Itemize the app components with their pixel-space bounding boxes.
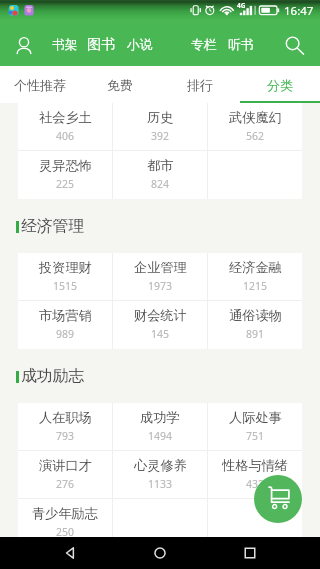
- button[interactable]: 人在职场: [18, 403, 112, 451]
- button[interactable]: Shopping cart: [254, 475, 302, 523]
- staticText: 心灵修养: [134, 457, 187, 474]
- staticText: 562: [246, 129, 265, 143]
- button[interactable]: 企业管理: [113, 253, 207, 301]
- staticText: 成功励志: [21, 366, 85, 386]
- staticText: 4G: [237, 1, 246, 10]
- button[interactable]: 武侠魔幻: [208, 103, 302, 151]
- staticText: 小说: [127, 37, 153, 53]
- staticText: 演讲口才: [39, 457, 92, 474]
- staticText: 历史: [147, 109, 174, 126]
- staticText: 276: [56, 477, 75, 491]
- button[interactable]: 免费: [80, 66, 160, 103]
- staticText: 1133: [148, 477, 173, 491]
- button[interactable]: Profile: [10, 31, 38, 59]
- button[interactable]: 听书: [227, 22, 255, 66]
- staticText: 751: [246, 429, 265, 443]
- staticText: 专栏: [191, 37, 217, 53]
- button[interactable]: 经济金融: [208, 253, 302, 301]
- staticText: 1515: [53, 279, 78, 293]
- staticText: 性格与情绪: [222, 457, 288, 474]
- button[interactable]: 演讲口才: [18, 451, 112, 499]
- staticText: 成功学: [140, 409, 180, 426]
- staticText: 406: [56, 129, 75, 143]
- staticText: 投资理财: [39, 259, 92, 276]
- staticText: 1973: [148, 279, 173, 293]
- staticText: 武侠魔幻: [229, 109, 282, 126]
- staticText: 排行: [187, 77, 213, 93]
- button[interactable]: Back: [50, 537, 90, 569]
- button[interactable]: 心灵修养: [113, 451, 207, 499]
- button[interactable]: 通俗读物: [208, 301, 302, 349]
- button[interactable]: 人际处事: [208, 403, 302, 451]
- button[interactable]: 市场营销: [18, 301, 112, 349]
- staticText: 经济金融: [229, 259, 282, 276]
- button[interactable]: 都市: [113, 151, 207, 199]
- button[interactable]: 个性推荐: [0, 66, 80, 103]
- staticText: 432: [246, 477, 265, 491]
- staticText: 16:47: [284, 3, 314, 19]
- button[interactable]: 专栏: [190, 22, 218, 66]
- staticText: 392: [151, 129, 170, 143]
- staticText: 1494: [148, 429, 173, 443]
- button[interactable]: 社会乡土: [18, 103, 112, 151]
- staticText: 书架: [52, 37, 78, 53]
- button[interactable]: Home: [140, 537, 180, 569]
- button[interactable]: 历史: [113, 103, 207, 151]
- staticText: 1215: [243, 279, 268, 293]
- staticText: 经济管理: [21, 216, 85, 236]
- staticText: 市场营销: [39, 307, 92, 324]
- button[interactable]: 分类: [240, 66, 320, 103]
- staticText: 图书: [87, 36, 115, 54]
- staticText: 免费: [107, 77, 133, 93]
- staticText: 人际处事: [229, 409, 282, 426]
- button[interactable]: 小说: [126, 22, 154, 66]
- staticText: 891: [246, 327, 265, 341]
- staticText: 人在职场: [39, 409, 92, 426]
- staticText: 分类: [267, 77, 293, 93]
- staticText: 社会乡土: [39, 109, 92, 126]
- staticText: 都市: [147, 157, 174, 174]
- button[interactable]: 书架: [51, 22, 79, 66]
- button[interactable]: 图书: [86, 22, 116, 66]
- staticText: 企业管理: [134, 259, 187, 276]
- button[interactable]: Search: [280, 31, 310, 61]
- staticText: 青少年励志: [32, 505, 98, 522]
- staticText: 225: [56, 177, 75, 191]
- button[interactable]: 灵异恐怖: [18, 151, 112, 199]
- button[interactable]: 成功学: [113, 403, 207, 451]
- staticText: 灵异恐怖: [39, 157, 92, 174]
- staticText: 个性推荐: [14, 77, 66, 93]
- staticText: 824: [151, 177, 170, 191]
- staticText: 145: [151, 327, 170, 341]
- staticText: 通俗读物: [229, 307, 282, 324]
- staticText: 250: [56, 525, 75, 537]
- button[interactable]: 青少年励志: [18, 499, 112, 537]
- staticText: 793: [56, 429, 75, 443]
- button[interactable]: 财会统计: [113, 301, 207, 349]
- staticText: 财会统计: [134, 307, 187, 324]
- button[interactable]: 排行: [160, 66, 240, 103]
- staticText: 听书: [228, 37, 254, 53]
- staticText: 989: [56, 327, 75, 341]
- button[interactable]: 性格与情绪: [208, 451, 302, 499]
- button[interactable]: Recent apps: [230, 537, 270, 569]
- button[interactable]: 投资理财: [18, 253, 112, 301]
